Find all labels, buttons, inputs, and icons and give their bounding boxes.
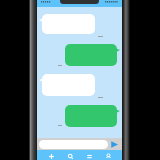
- button[interactable]: Search: [63, 150, 77, 160]
- button[interactable]: Menu: [82, 150, 96, 160]
- button[interactable]: Send: [111, 141, 118, 148]
- button[interactable]: Profile: [101, 150, 115, 160]
- button[interactable]: Message: [39, 14, 95, 34]
- button[interactable]: Add: [44, 150, 58, 160]
- button[interactable]: Message: [65, 105, 120, 127]
- button[interactable]: Message: [39, 74, 95, 96]
- button[interactable]: Message: [65, 44, 120, 66]
- button[interactable]: Message input: [39, 140, 108, 149]
